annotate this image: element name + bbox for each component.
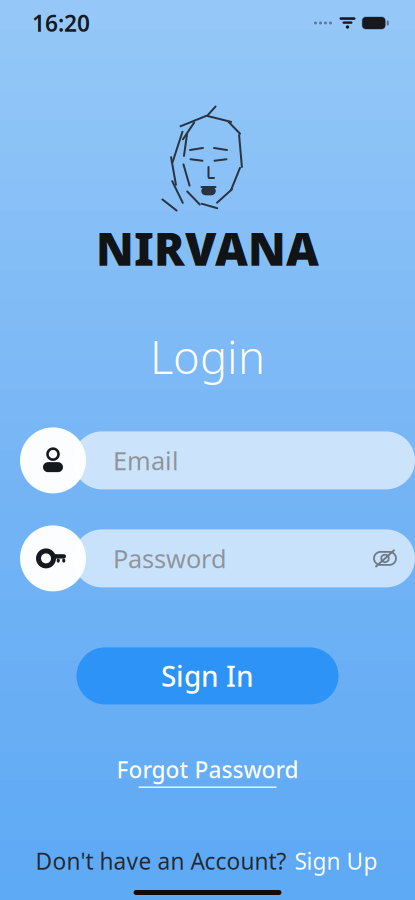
button[interactable]: Forgot Password (106, 748, 308, 794)
button[interactable]: Sign Up (292, 840, 379, 882)
staticText: Don't have an Account? (35, 846, 292, 876)
button[interactable]: Sign In (76, 647, 338, 704)
staticText: 16:20 (32, 8, 90, 38)
button[interactable]: Show password (363, 536, 407, 580)
staticText: Sign Up (294, 846, 377, 876)
staticText: NIRVANA (96, 218, 319, 278)
staticText: Forgot Password (116, 754, 298, 784)
staticText: Sign In (161, 657, 254, 694)
staticText: Email (113, 444, 179, 477)
staticText: Login (150, 326, 265, 386)
staticText: Password (113, 542, 227, 575)
